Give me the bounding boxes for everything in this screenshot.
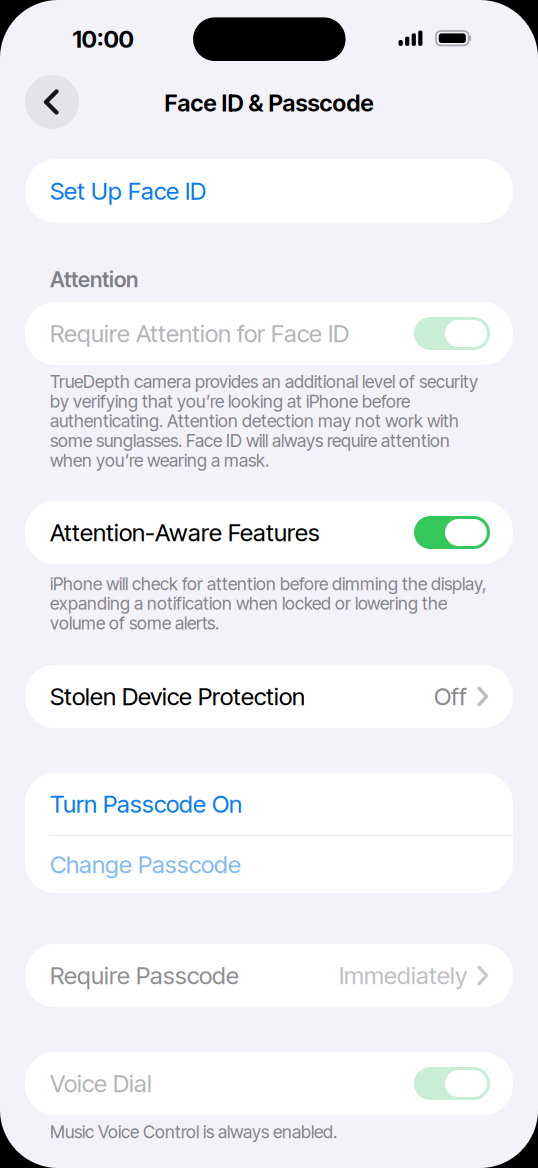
staticText: Off xyxy=(434,682,467,711)
button[interactable]: Require Passcode xyxy=(25,944,513,1007)
staticText: Stolen Device Protection xyxy=(50,682,305,711)
button[interactable]: Attention-Aware Features xyxy=(414,516,490,549)
staticText: Immediately xyxy=(339,961,467,990)
button[interactable]: Voice Dial xyxy=(414,1067,490,1100)
button[interactable]: Set Up Face ID xyxy=(25,159,513,223)
staticText: Set Up Face ID xyxy=(50,176,206,205)
staticText: Music Voice Control is always enabled. xyxy=(50,1122,337,1142)
button[interactable]: Turn Passcode On xyxy=(25,773,513,835)
staticText: Require Attention for Face ID xyxy=(50,319,349,348)
staticText: Require Passcode xyxy=(50,961,239,990)
button[interactable]: Back xyxy=(25,75,79,129)
staticText: Attention-Aware Features xyxy=(50,518,320,547)
staticText: Change Passcode xyxy=(50,850,241,879)
staticText: Turn Passcode On xyxy=(50,789,242,818)
staticText: iPhone will check for attention before d… xyxy=(50,574,487,633)
staticText: Attention xyxy=(50,266,138,292)
button[interactable]: Require Attention for Face ID xyxy=(414,317,490,350)
staticText: Voice Dial xyxy=(50,1069,152,1098)
staticText: 10:00 xyxy=(72,24,133,53)
staticText: Face ID & Passcode xyxy=(164,89,373,117)
button[interactable]: Change Passcode xyxy=(25,836,513,893)
button[interactable]: Stolen Device Protection xyxy=(25,665,513,728)
staticText: TrueDepth camera provides an additional … xyxy=(50,372,478,470)
